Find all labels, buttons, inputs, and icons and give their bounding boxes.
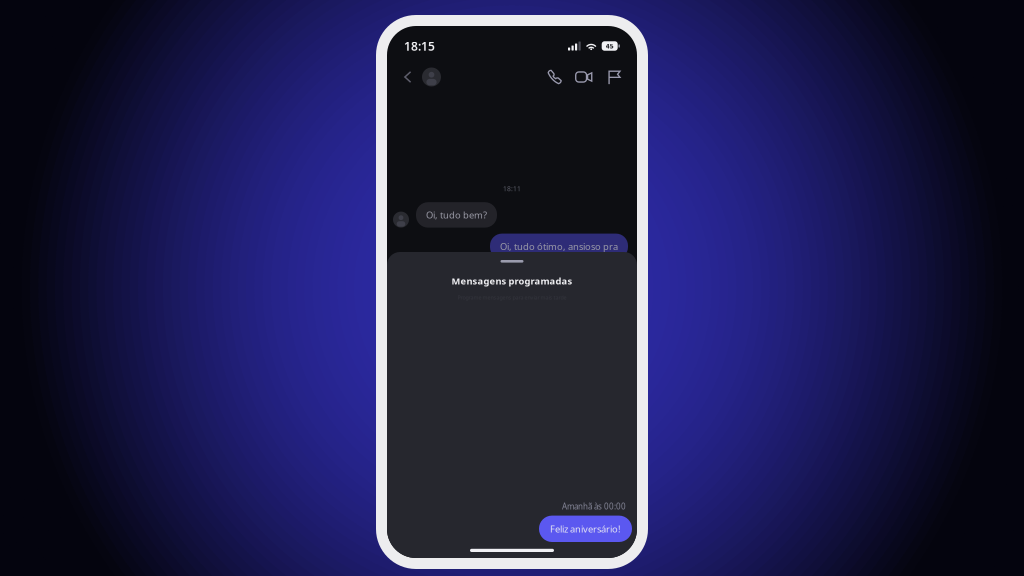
button[interactable]: Voice call xyxy=(544,66,565,87)
staticText: Feliz aniversário! xyxy=(550,523,621,535)
button[interactable]: Video call xyxy=(573,66,595,88)
button[interactable]: Feliz aniversário! xyxy=(387,516,637,542)
staticText: 18:11 xyxy=(503,184,521,193)
staticText: Oi, tudo ótimo, ansioso pra xyxy=(500,240,618,252)
button[interactable]: Scheduled messages xyxy=(603,66,624,87)
staticText: Oi, tudo bem? xyxy=(426,209,487,221)
button[interactable]: Back xyxy=(398,64,418,90)
button[interactable]: Contact profile xyxy=(418,63,445,90)
staticText: Amanhã às 00:00 xyxy=(562,501,626,512)
staticText: Mensagens programadas xyxy=(451,275,572,287)
staticText: 45 xyxy=(606,42,614,50)
staticText: 18:15 xyxy=(404,38,435,54)
